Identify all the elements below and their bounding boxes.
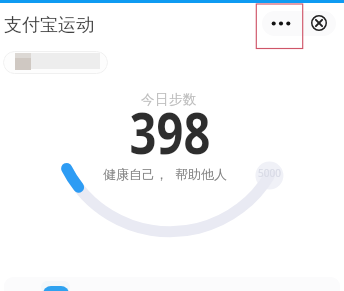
button[interactable] — [4, 277, 340, 291]
staticText: 今日步数 — [0, 91, 341, 108]
staticText: 5000 — [258, 166, 281, 180]
button[interactable] — [3, 51, 108, 74]
button[interactable]: Close — [299, 11, 336, 36]
staticText: 支付宝运动 — [4, 14, 94, 37]
staticText: 健康自己， 帮助他人 — [0, 165, 337, 183]
button[interactable]: More options — [262, 11, 299, 36]
staticText: 398 — [30, 92, 309, 171]
